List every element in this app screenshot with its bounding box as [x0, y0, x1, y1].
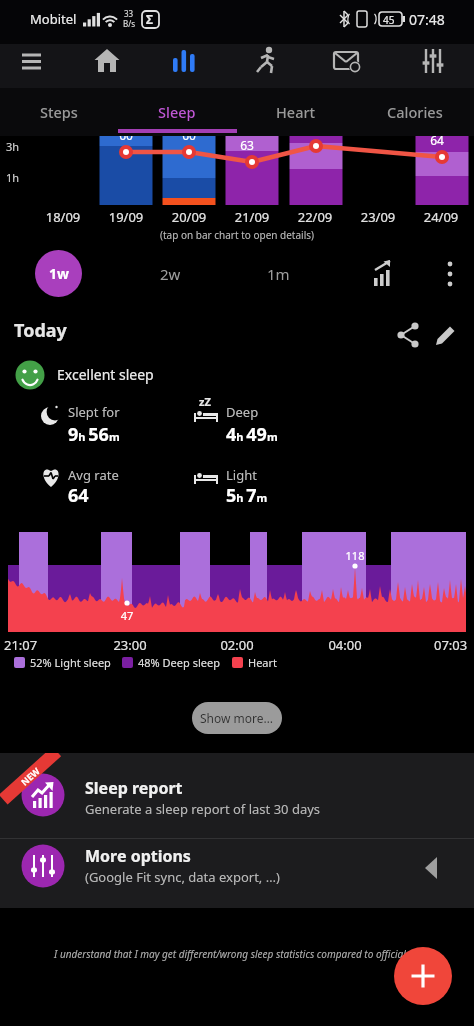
staticText: Generate a sleep report of last 30 days — [85, 800, 321, 818]
staticText: 33 — [124, 8, 134, 19]
button[interactable]: Excellent sleep — [14, 359, 274, 391]
button[interactable] — [240, 36, 290, 80]
staticText: 23:00 — [100, 636, 160, 654]
staticText: 23/09 — [348, 208, 408, 226]
button[interactable] — [426, 316, 464, 354]
staticText: B/s — [123, 18, 136, 29]
staticText: Sleep — [158, 102, 196, 122]
staticText: 5h 7m — [226, 483, 268, 508]
staticText: 48% Deep sleep — [138, 655, 220, 670]
staticText: Σ — [146, 11, 153, 27]
button[interactable] — [428, 248, 474, 300]
staticText: Light — [226, 466, 257, 484]
staticText: 3h — [6, 139, 20, 154]
button[interactable]: More options — [0, 839, 474, 908]
button[interactable] — [159, 36, 209, 80]
button[interactable]: Show more… — [192, 702, 282, 734]
staticText: 04:00 — [315, 636, 375, 654]
staticText: 64 — [417, 136, 457, 148]
staticText: 24/09 — [411, 208, 471, 226]
staticText: Excellent sleep — [57, 365, 154, 384]
staticText: Slept for — [68, 403, 120, 421]
staticText: More options — [85, 845, 191, 867]
staticText: Show more… — [200, 710, 274, 726]
staticText: 1w — [49, 264, 69, 283]
staticText: 1m — [267, 264, 290, 284]
button[interactable] — [394, 947, 452, 1005]
staticText: Calories — [387, 102, 443, 122]
staticText: 60 — [169, 136, 209, 143]
button[interactable] — [360, 248, 412, 300]
staticText: Sleep report — [85, 777, 183, 799]
button[interactable] — [390, 316, 428, 354]
staticText: Steps — [40, 102, 78, 122]
staticText: Avg rate — [68, 466, 119, 484]
staticText: 07:03 — [434, 636, 468, 654]
staticText: 45 — [383, 13, 395, 27]
staticText: Today — [14, 318, 67, 343]
button[interactable] — [8, 36, 58, 80]
staticText: Heart — [276, 102, 316, 122]
button[interactable]: Steps — [0, 88, 118, 136]
staticText: 20/09 — [159, 208, 219, 226]
staticText: (Google Fit sync, data export, …) — [85, 868, 280, 886]
staticText: 118 — [337, 548, 373, 563]
staticText: 2w — [160, 264, 181, 284]
staticText: 22/09 — [285, 208, 345, 226]
staticText: 19/09 — [96, 208, 156, 226]
staticText: 4h 49m — [226, 422, 278, 447]
staticText: Deep — [226, 403, 259, 421]
button[interactable]: Sleep — [118, 88, 236, 136]
button[interactable] — [82, 36, 132, 80]
button[interactable]: Calories — [355, 88, 474, 136]
staticText: Mobitel — [30, 10, 77, 28]
staticText: 18/09 — [33, 208, 93, 226]
button[interactable]: Heart — [236, 88, 355, 136]
staticText: 02:00 — [207, 636, 267, 654]
staticText: 1h — [6, 170, 20, 185]
button[interactable]: Sleep report — [0, 753, 474, 838]
staticText: Heart — [248, 655, 278, 670]
staticText: 9h 56m — [68, 422, 120, 447]
staticText: 63 — [227, 137, 267, 153]
staticText: I understand that I may get different/wr… — [0, 947, 474, 961]
staticText: 47 — [112, 608, 142, 623]
button[interactable] — [408, 36, 458, 80]
button[interactable]: 1w — [35, 250, 82, 297]
staticText: 64 — [68, 483, 89, 508]
staticText: 60 — [106, 136, 146, 143]
button[interactable]: 1m — [248, 248, 308, 300]
staticText: zZ — [199, 394, 211, 409]
staticText: (tap on bar chart to open details) — [87, 228, 387, 242]
staticText: 07:48 — [409, 10, 445, 29]
staticText: 52% Light sleep — [30, 655, 111, 670]
staticText: 21:07 — [4, 636, 38, 654]
button[interactable]: 2w — [140, 248, 200, 300]
staticText: NEW — [18, 764, 42, 788]
button[interactable] — [321, 36, 371, 80]
staticText: 21/09 — [222, 208, 282, 226]
